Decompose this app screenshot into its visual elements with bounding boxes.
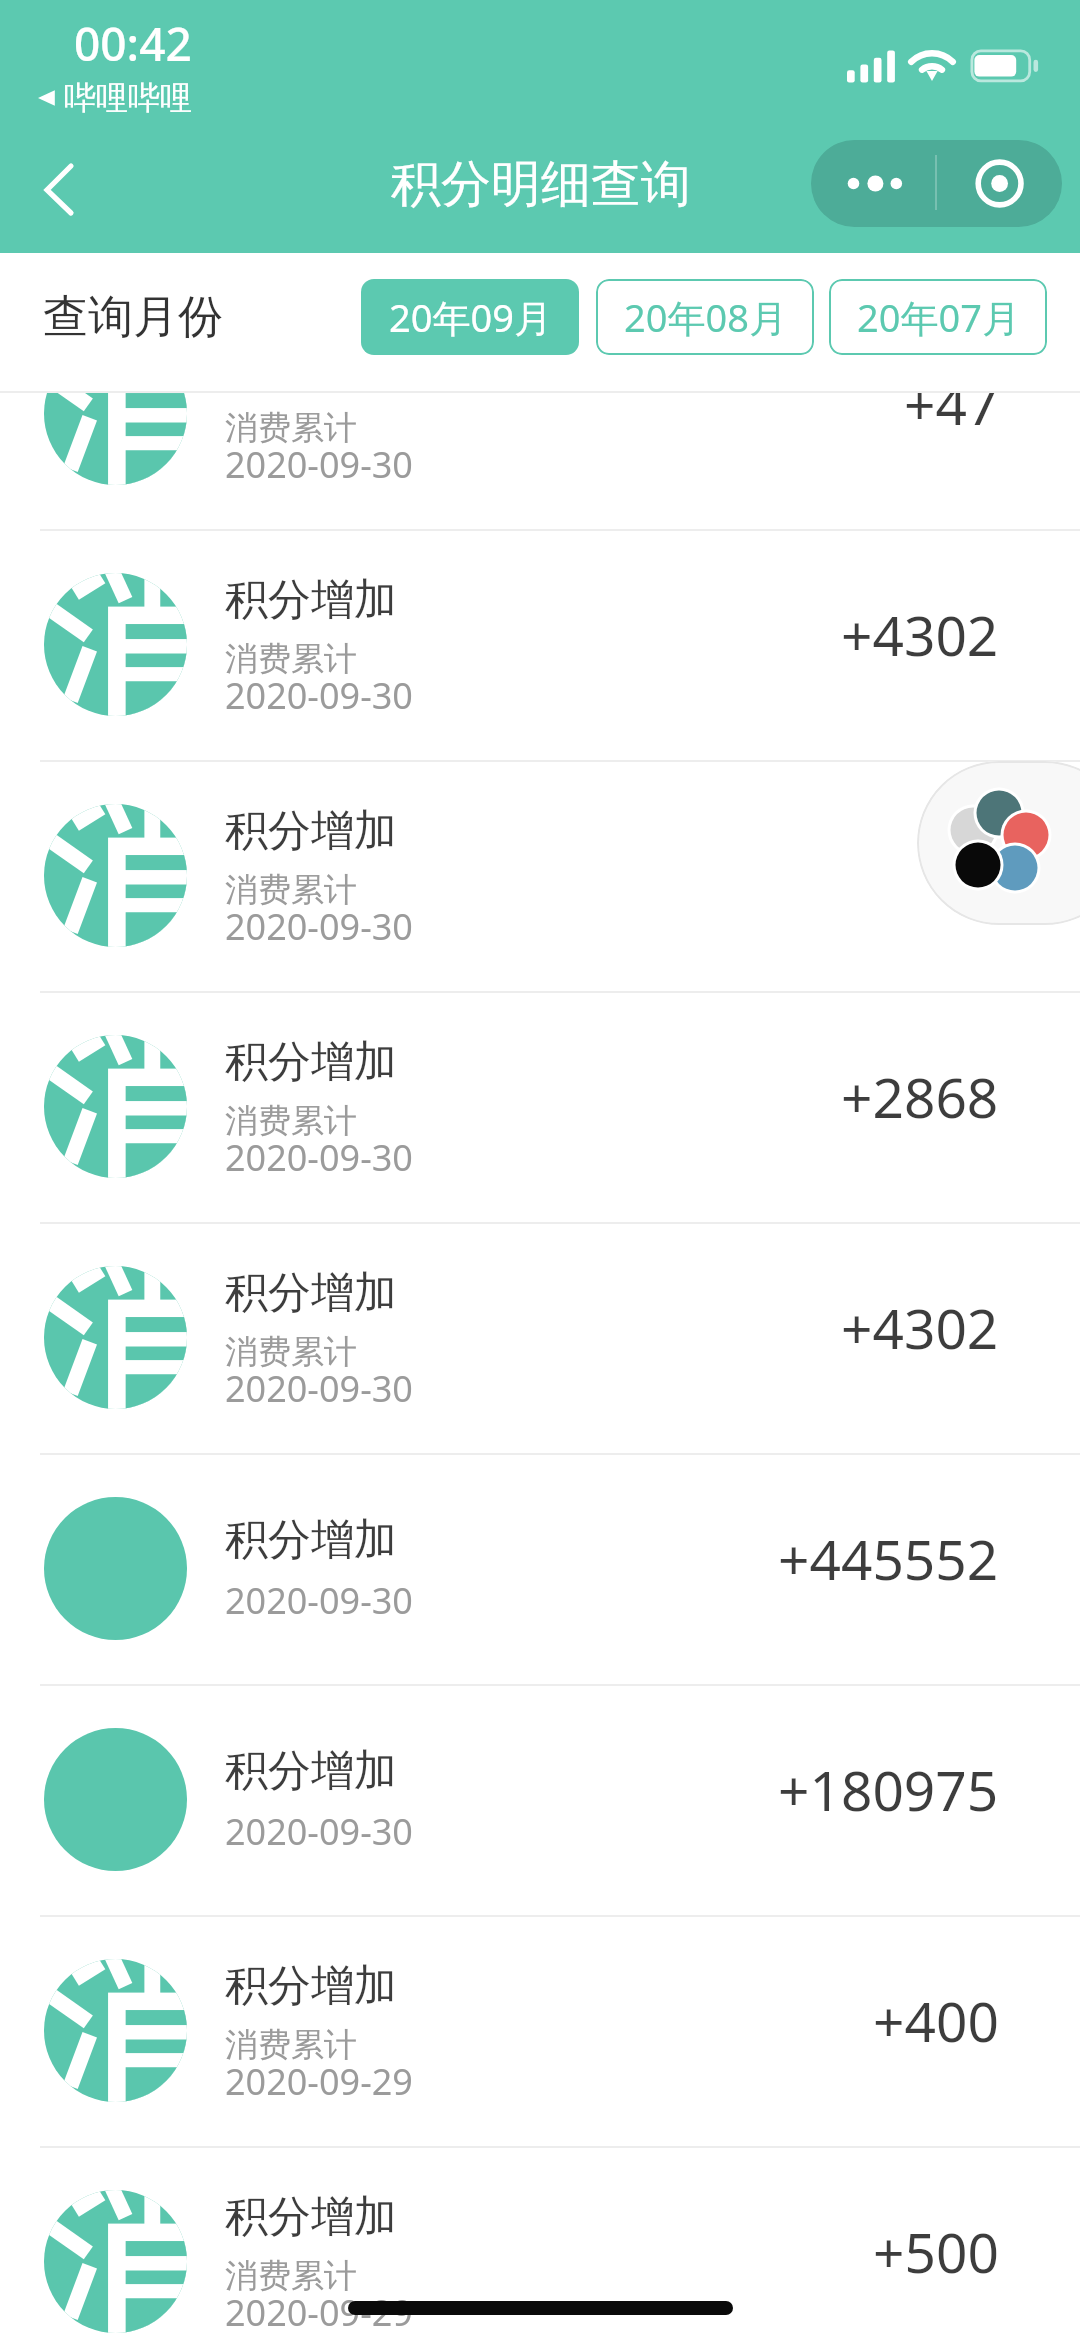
staticText: 2020-09-29 (225, 2057, 413, 2106)
button[interactable]: 积分增加 (0, 298, 1080, 529)
staticText: +4302 (841, 597, 999, 672)
button[interactable]: 20年07月 (829, 279, 1047, 355)
staticText: 消费累计 (225, 2024, 357, 2066)
staticText: +5 (936, 828, 999, 903)
button[interactable]: Screen recorder (917, 761, 1080, 925)
staticText: 积分增加 (225, 2190, 397, 2244)
staticText: 查询月份 (43, 289, 223, 346)
staticText: 积分增加 (225, 1744, 397, 1798)
button[interactable]: 积分增加 (0, 1684, 1080, 1915)
staticText: 2020-09-30 (225, 1133, 413, 1182)
staticText: 哔哩哔哩 (64, 78, 192, 118)
staticText: 消费累计 (225, 407, 357, 449)
staticText: 2020-09-30 (225, 1364, 413, 1413)
staticText: 消费累计 (225, 1331, 357, 1373)
button[interactable]: 积分增加 (0, 2146, 1080, 2339)
button[interactable]: Close mini program (937, 140, 1062, 227)
staticText: +4302 (841, 1290, 999, 1365)
staticText: 积分增加 (225, 573, 397, 627)
staticText: +47 (904, 366, 999, 441)
staticText: +500 (873, 2214, 999, 2289)
staticText: 积分增加 (225, 1959, 397, 2013)
staticText: 20年07月 (857, 291, 1020, 343)
staticText: 积分增加 (225, 804, 397, 858)
staticText: +180975 (778, 1752, 999, 1827)
staticText: 2020-09-30 (225, 1807, 413, 1856)
staticText: 积分增加 (225, 1266, 397, 1320)
staticText: 积分增加 (225, 342, 397, 396)
staticText: 2020-09-30 (225, 671, 413, 720)
staticText: 2020-09-30 (225, 440, 413, 489)
staticText: 积分明细查询 (391, 153, 691, 216)
staticText: 20年08月 (624, 291, 787, 343)
staticText: 2020-09-30 (225, 1576, 413, 1625)
staticText: 消费累计 (225, 869, 357, 911)
staticText: +2868 (841, 1059, 999, 1134)
staticText: 消费累计 (225, 2255, 357, 2297)
button[interactable]: 积分增加 (0, 529, 1080, 760)
button[interactable]: 20年08月 (596, 279, 814, 355)
button[interactable]: 积分增加 (0, 760, 1080, 991)
staticText: 积分增加 (225, 1035, 397, 1089)
button[interactable]: 积分增加 (0, 1915, 1080, 2146)
button[interactable]: Back (12, 135, 108, 231)
staticText: 消费累计 (225, 1100, 357, 1142)
staticText: 2020-09-30 (225, 902, 413, 951)
button[interactable]: 20年09月 (361, 279, 579, 355)
staticText: 消费累计 (225, 638, 357, 680)
button[interactable]: 积分增加 (0, 1453, 1080, 1684)
button[interactable]: More options (811, 140, 935, 227)
button[interactable]: 积分增加 (0, 1222, 1080, 1453)
staticText: +445552 (778, 1521, 999, 1596)
button[interactable]: 积分增加 (0, 991, 1080, 1222)
staticText: 00:42 (74, 12, 192, 75)
staticText: 积分增加 (225, 1513, 397, 1567)
staticText: 2020-09-29 (225, 2288, 413, 2337)
staticText: +400 (873, 1983, 999, 2058)
staticText: 20年09月 (389, 291, 552, 343)
